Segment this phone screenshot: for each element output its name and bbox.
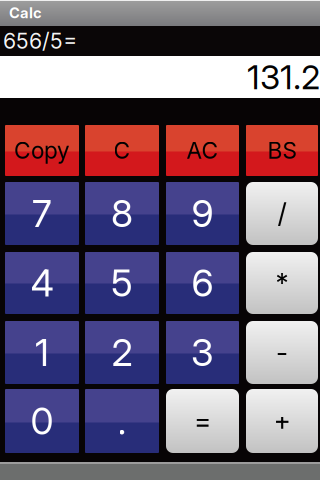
button[interactable]: 7 xyxy=(5,182,79,245)
staticText: AC xyxy=(186,137,218,164)
staticText: Copy xyxy=(14,137,70,164)
staticText: C xyxy=(113,137,130,164)
staticText: BS xyxy=(267,137,296,164)
staticText: 5 xyxy=(111,260,133,306)
button[interactable]: + xyxy=(246,389,318,453)
button[interactable]: BS xyxy=(246,125,318,176)
button[interactable]: * xyxy=(246,252,318,314)
staticText: * xyxy=(275,267,288,299)
staticText: = xyxy=(194,405,211,437)
staticText: . xyxy=(117,398,126,444)
button[interactable]: / xyxy=(246,182,318,245)
staticText: 4 xyxy=(30,260,53,306)
staticText: 0 xyxy=(30,398,53,444)
button[interactable]: Copy xyxy=(5,125,79,176)
button[interactable]: - xyxy=(246,321,318,384)
staticText: / xyxy=(277,197,286,230)
staticText: 131.2 xyxy=(247,57,320,97)
button[interactable]: . xyxy=(85,389,159,453)
staticText: 9 xyxy=(191,191,213,236)
staticText: 2 xyxy=(111,330,132,375)
button[interactable]: C xyxy=(85,125,159,176)
button[interactable]: 4 xyxy=(5,252,79,314)
button[interactable]: 9 xyxy=(166,182,239,245)
button[interactable]: 8 xyxy=(85,182,159,245)
staticText: 7 xyxy=(32,191,52,236)
button[interactable]: 1 xyxy=(5,321,79,384)
staticText: 656/5= xyxy=(3,28,77,54)
staticText: 6 xyxy=(191,260,213,306)
button[interactable]: 0 xyxy=(5,389,79,453)
staticText: 1 xyxy=(35,330,49,375)
button[interactable]: 5 xyxy=(85,252,159,314)
staticText: 8 xyxy=(111,191,133,236)
button[interactable]: 2 xyxy=(85,321,159,384)
button[interactable]: 6 xyxy=(166,252,239,314)
button[interactable]: = xyxy=(166,389,239,453)
staticText: Calc xyxy=(9,4,42,22)
button[interactable]: AC xyxy=(166,125,239,176)
button[interactable]: 3 xyxy=(166,321,239,384)
staticText: 3 xyxy=(191,330,214,375)
staticText: + xyxy=(273,405,290,437)
staticText: - xyxy=(276,336,288,369)
